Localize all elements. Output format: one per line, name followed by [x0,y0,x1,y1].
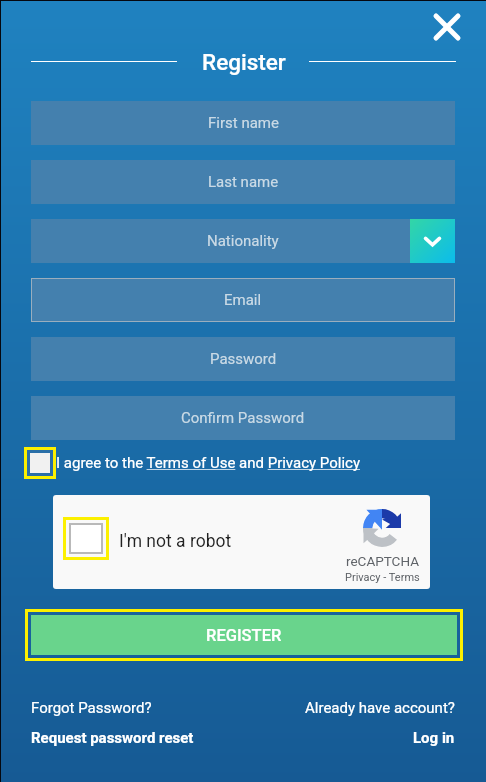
button[interactable]: I'm not a robot [69,523,103,554]
button[interactable]: Password [31,337,455,381]
staticText: I agree to the Terms of Use and Privacy … [56,454,361,472]
button[interactable]: Nationality [31,219,455,263]
button[interactable]: Request password reset [31,729,194,747]
staticText: I'm not a robot [119,531,232,552]
staticText: Privacy - Terms [345,571,420,584]
staticText: First name [208,114,279,132]
button[interactable]: Already have account? [305,699,455,717]
staticText: Nationality [207,232,279,250]
staticText: reCAPTCHA [346,553,419,569]
button[interactable]: Confirm Password [31,396,455,440]
staticText: Last name [208,173,279,191]
staticText: REGISTER [206,626,282,645]
button[interactable]: Forgot Password? [31,699,152,717]
button[interactable]: REGISTER [31,615,457,655]
button[interactable]: Close [429,9,465,45]
staticText: Password [210,350,277,368]
button[interactable]: First name [31,101,455,145]
button[interactable]: Log in [413,729,455,747]
staticText: Confirm Password [181,409,305,427]
staticText: Register [202,49,286,75]
button[interactable]: Open nationality list [410,219,455,263]
button[interactable]: I agree to the Terms of Use and Privacy … [24,447,361,479]
button[interactable]: Last name [31,160,455,204]
staticText: Email [224,291,262,309]
button[interactable]: Email [31,278,455,322]
